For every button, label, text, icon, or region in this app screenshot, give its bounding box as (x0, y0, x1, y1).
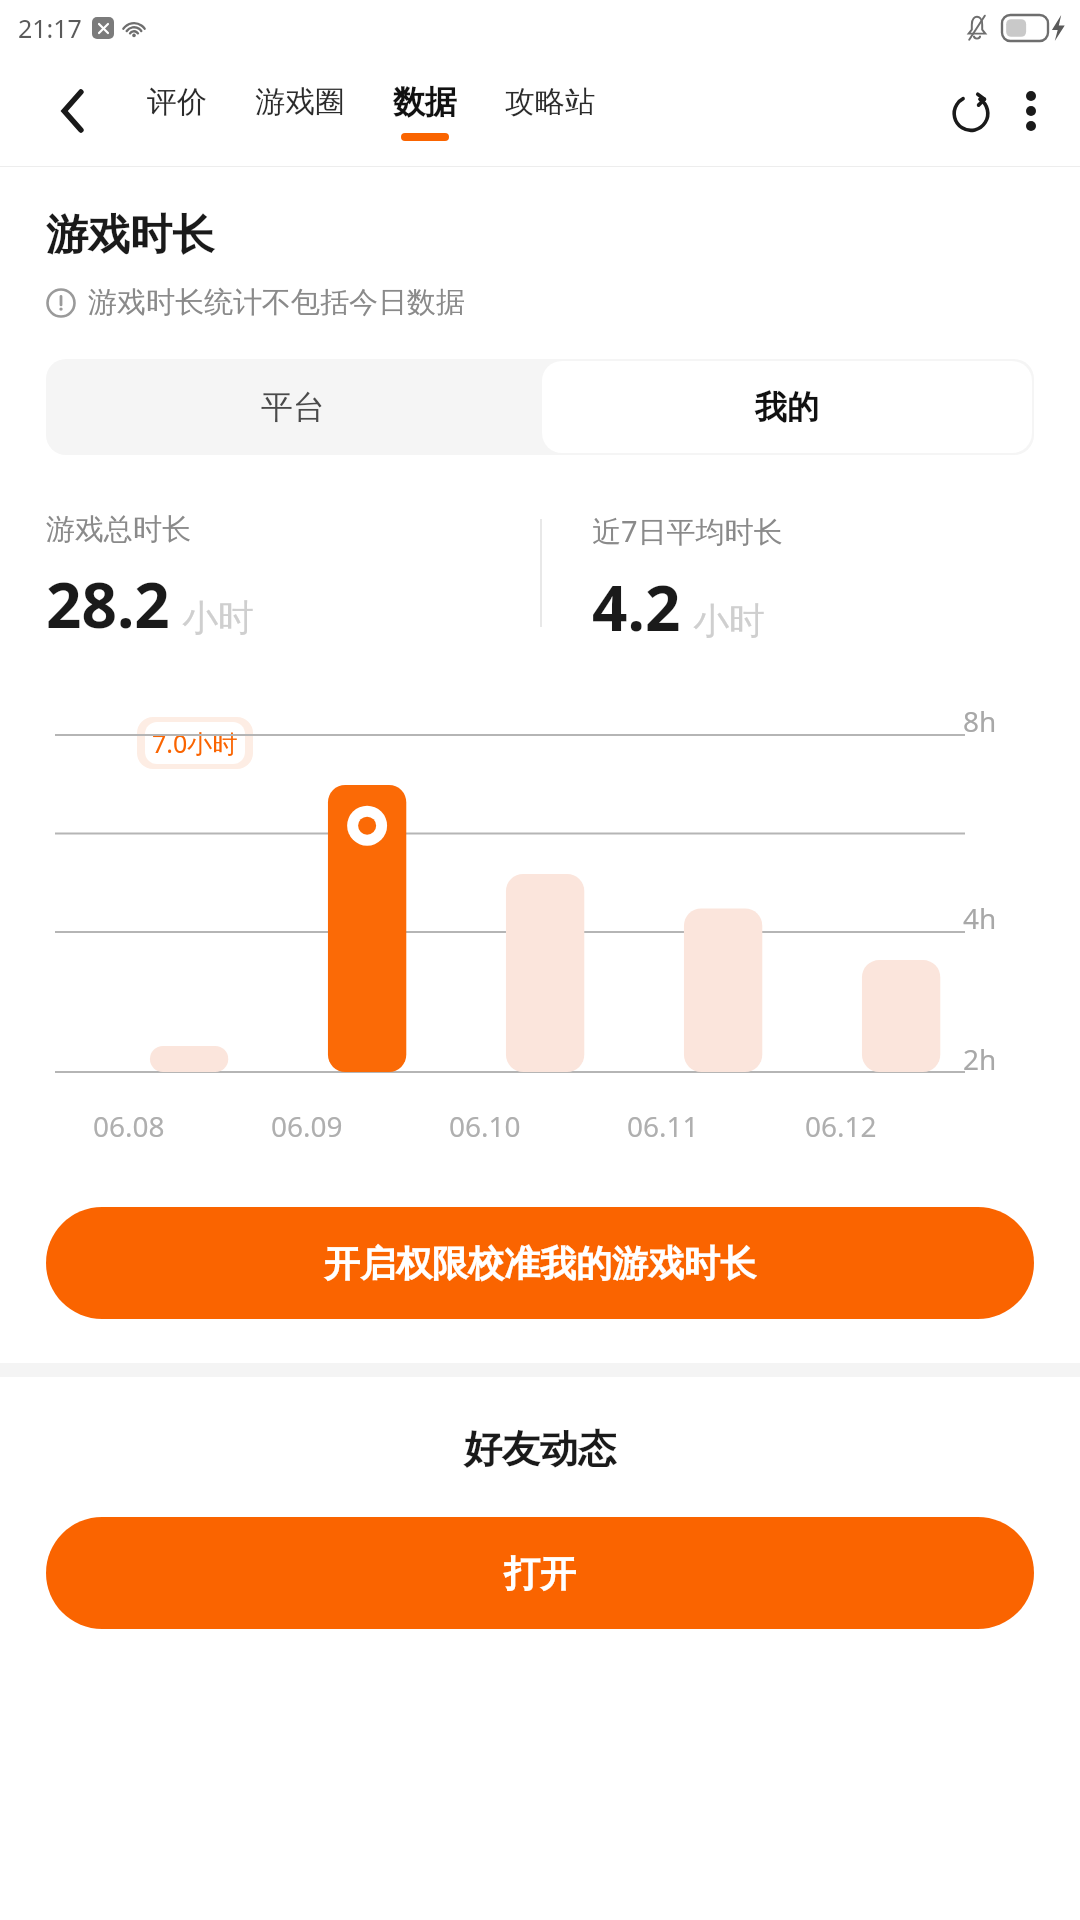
staticText: 4.2 (592, 565, 681, 649)
staticText: 近7日平均时长 (592, 511, 783, 551)
staticText: 小时 (693, 598, 765, 643)
staticText: 平台 (261, 387, 325, 427)
staticText: 好友动态 (0, 1425, 1080, 1473)
staticText: 06.12 (805, 1107, 877, 1145)
button[interactable]: 平台 (46, 359, 540, 455)
button[interactable]: 我的 (542, 361, 1032, 453)
staticText: 8h (963, 702, 997, 740)
staticText: 28.2 (46, 562, 170, 646)
button[interactable]: Share (940, 80, 1002, 142)
staticText: 小时 (182, 595, 254, 640)
staticText: 7.0小时 (152, 726, 238, 760)
staticText: 开启权限校准我的游戏时长 (324, 1241, 756, 1286)
staticText: 游戏时长 (46, 209, 214, 262)
staticText: 2h (963, 1040, 997, 1078)
staticText: 游戏时长统计不包括今日数据 (88, 284, 465, 321)
staticText: 06.10 (449, 1107, 521, 1145)
button[interactable]: 数据 (391, 82, 459, 141)
staticText: 我的 (755, 387, 819, 427)
staticText: 打开 (504, 1551, 576, 1596)
button[interactable]: Back (46, 84, 100, 138)
button[interactable]: 开启权限校准我的游戏时长 (46, 1207, 1034, 1319)
staticText: 评价 (147, 83, 207, 121)
staticText: 攻略站 (505, 83, 595, 121)
staticText: 游戏总时长 (46, 511, 191, 548)
staticText: 4h (963, 899, 997, 937)
staticText: 数据 (393, 82, 457, 122)
staticText: 21:17 (18, 11, 82, 45)
button[interactable]: 游戏圈 (253, 83, 347, 140)
button[interactable]: 攻略站 (503, 83, 597, 140)
button[interactable]: 打开 (46, 1517, 1034, 1629)
button[interactable]: More options (1002, 82, 1060, 140)
staticText: 06.08 (93, 1107, 165, 1145)
staticText: 06.09 (271, 1107, 343, 1145)
staticText: 游戏圈 (255, 83, 345, 121)
staticText: 06.11 (627, 1107, 699, 1145)
button[interactable]: 评价 (145, 83, 209, 140)
